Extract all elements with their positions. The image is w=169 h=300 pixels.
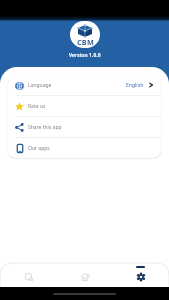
staticText: Rate us	[28, 103, 46, 110]
button[interactable]: Share this app	[8, 117, 161, 137]
button[interactable]: Our apps	[8, 138, 161, 158]
button[interactable]: Settings	[113, 263, 168, 287]
staticText: GROUP	[81, 47, 90, 48]
staticText: English	[126, 82, 144, 89]
staticText: Language	[28, 82, 52, 89]
staticText: CBM	[77, 37, 94, 47]
button[interactable]: Home	[57, 263, 112, 287]
button[interactable]: Language	[8, 75, 161, 95]
staticText: Version 1.0.0	[69, 52, 101, 59]
staticText: Share this app	[28, 124, 62, 131]
staticText: Our apps	[28, 145, 50, 152]
button[interactable]: Rate us	[8, 96, 161, 116]
button[interactable]: Gallery	[1, 263, 56, 287]
